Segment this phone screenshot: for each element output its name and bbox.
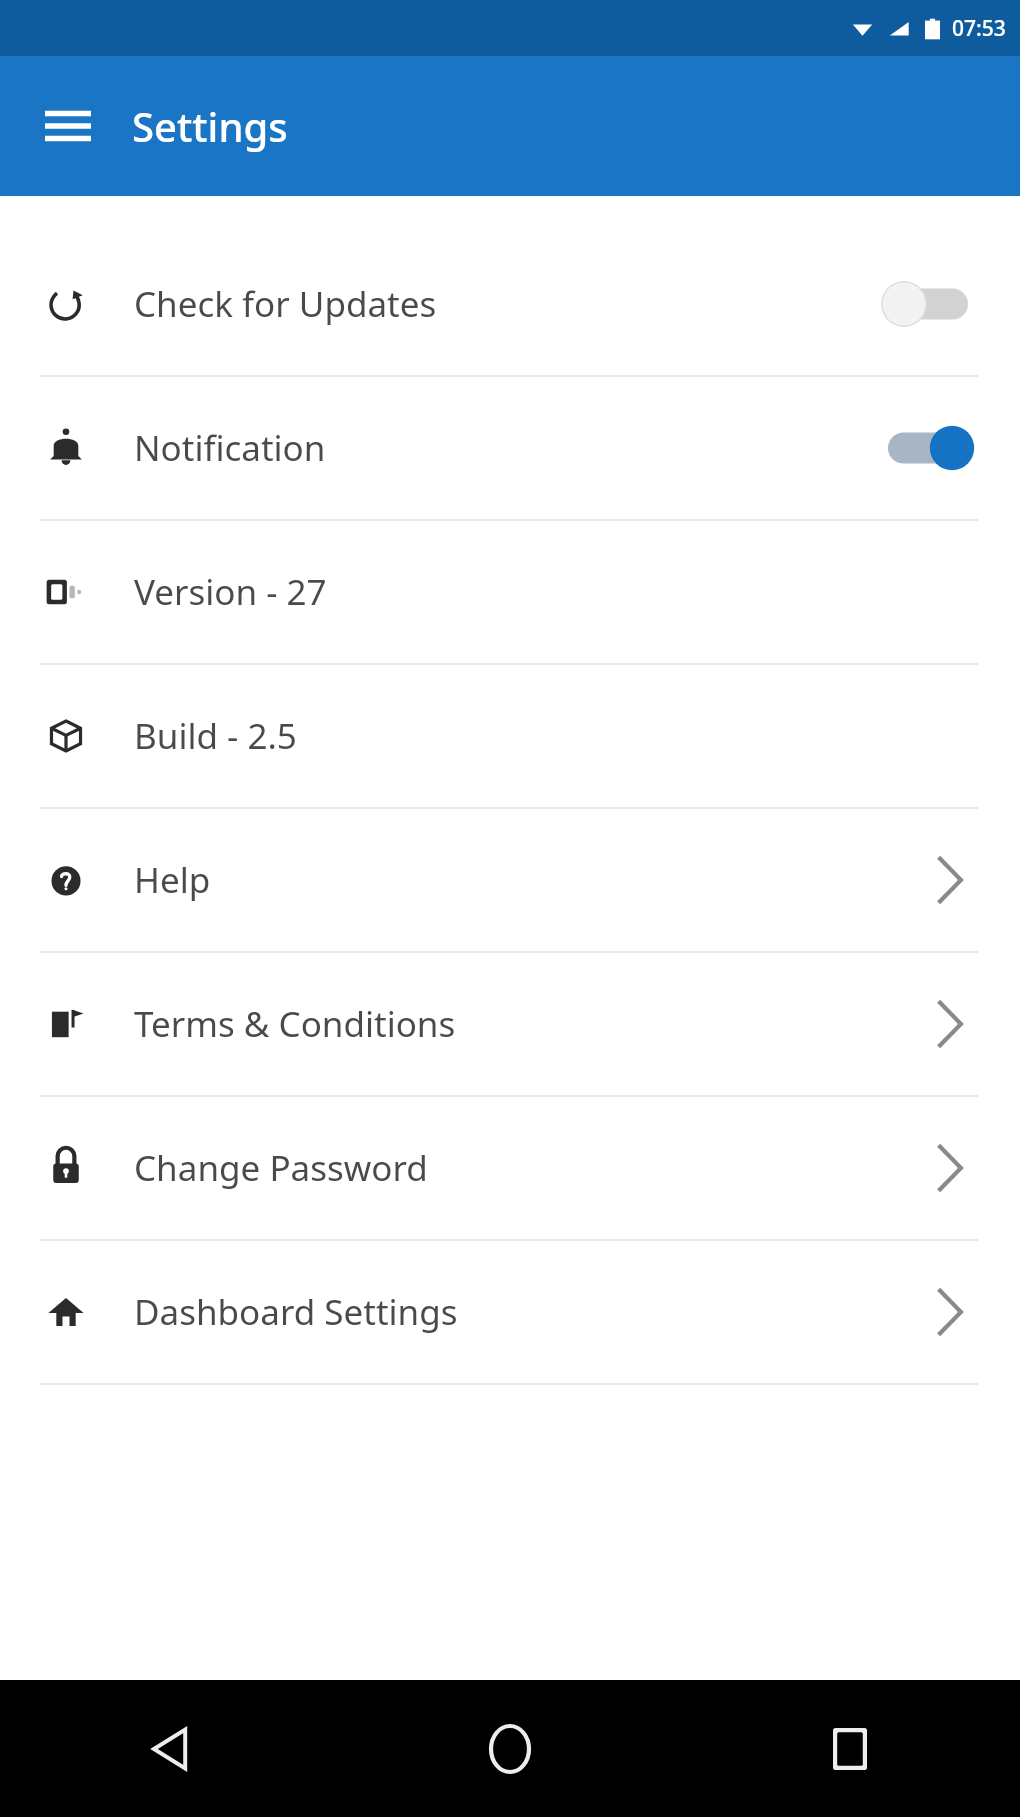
button[interactable]: Open navigation menu — [40, 98, 96, 154]
staticText: Version - 27 — [134, 568, 978, 616]
staticText: Check for Updates — [134, 280, 878, 328]
staticText: Notification — [134, 424, 878, 472]
button[interactable]: Notification — [0, 377, 1020, 519]
button[interactable]: Terms & Conditions — [0, 953, 1020, 1095]
button[interactable]: Open — [922, 1284, 978, 1340]
button[interactable]: Back — [0, 1680, 340, 1817]
staticText: 07:53 — [952, 14, 1006, 43]
staticText: Settings — [132, 99, 288, 153]
button[interactable]: Dashboard Settings — [0, 1241, 1020, 1383]
button[interactable]: Help — [0, 809, 1020, 951]
staticText: Change Password — [134, 1144, 922, 1192]
button[interactable]: Build - 2.5 — [0, 665, 1020, 807]
button[interactable]: Check for Updates — [0, 233, 1020, 375]
button[interactable]: Open — [922, 1140, 978, 1196]
button[interactable]: Open — [922, 852, 978, 908]
button[interactable]: Open — [922, 996, 978, 1052]
button[interactable]: Switch off — [878, 274, 978, 334]
button[interactable]: Home — [340, 1680, 680, 1817]
staticText: Dashboard Settings — [134, 1288, 922, 1336]
staticText: Help — [134, 856, 922, 904]
button[interactable]: Change Password — [0, 1097, 1020, 1239]
button[interactable]: Switch on — [878, 418, 978, 478]
button[interactable]: Version - 27 — [0, 521, 1020, 663]
button[interactable]: Recent apps — [680, 1680, 1020, 1817]
staticText: Terms & Conditions — [134, 1000, 922, 1048]
staticText: Build - 2.5 — [134, 712, 978, 760]
